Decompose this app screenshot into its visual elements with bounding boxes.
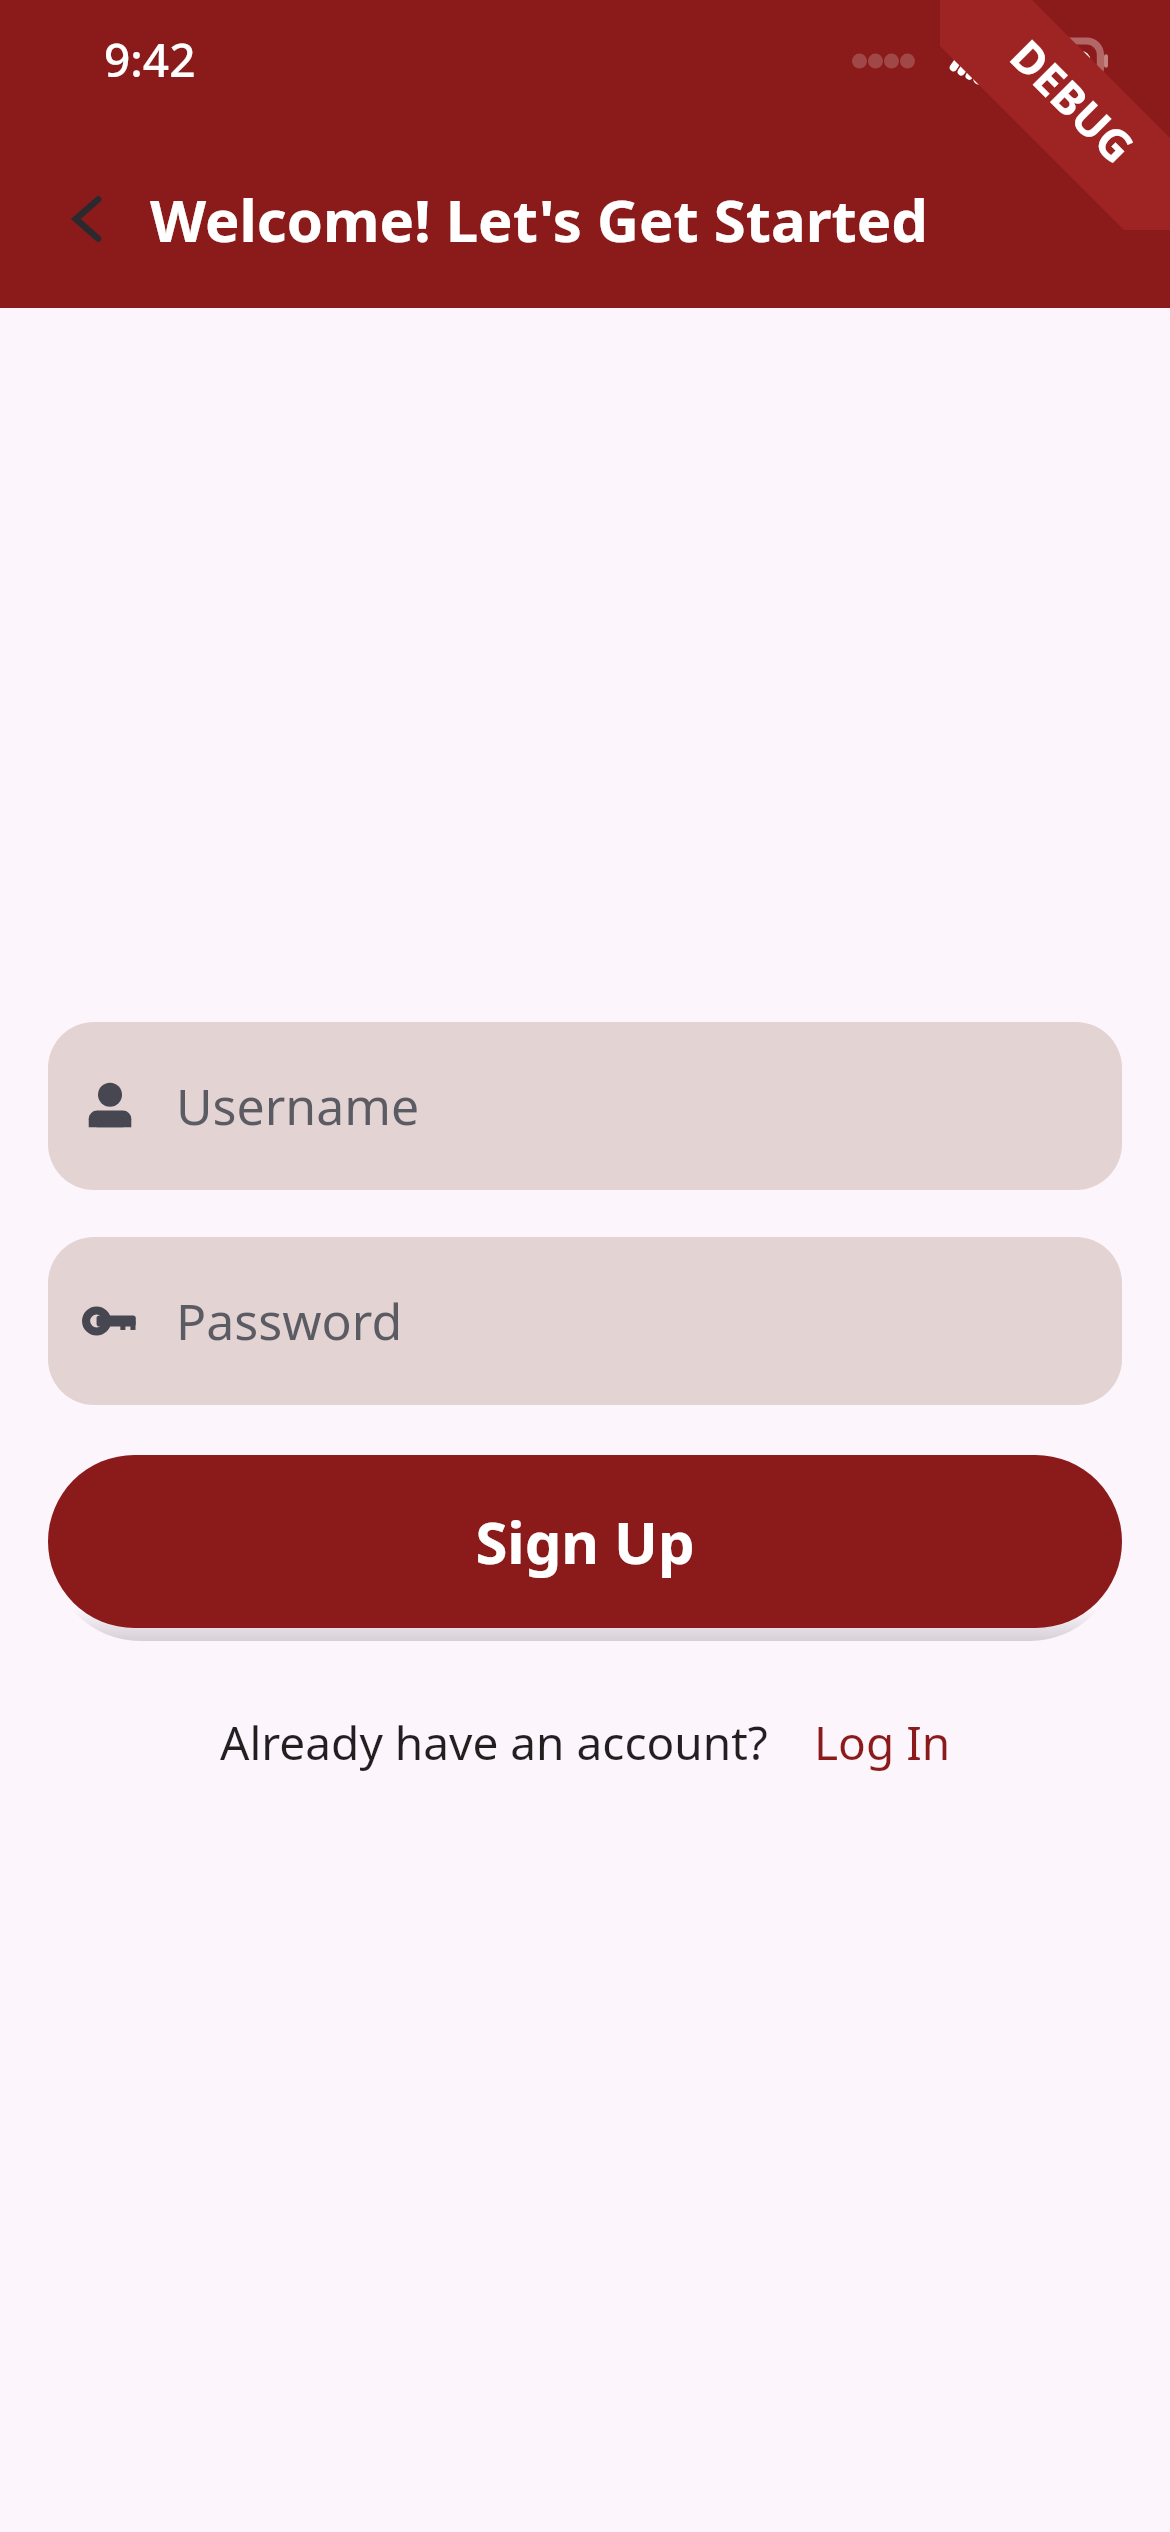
button[interactable]: Back xyxy=(38,170,136,268)
staticText: Already have an account? xyxy=(220,1711,768,1774)
staticText: Username xyxy=(176,1072,420,1140)
other: Username xyxy=(82,1078,138,1134)
button[interactable]: Password xyxy=(48,1237,1122,1405)
staticText: Password xyxy=(176,1287,403,1355)
staticText: Sign Up xyxy=(475,1502,695,1581)
other: Password xyxy=(82,1293,138,1349)
staticText: Log In xyxy=(814,1711,951,1774)
staticText: 9:42 xyxy=(104,28,196,91)
staticText: DEBUG xyxy=(998,26,1148,176)
button[interactable]: Sign Up xyxy=(48,1455,1122,1628)
staticText: Welcome! Let's Get Started xyxy=(150,180,929,259)
button[interactable]: Username xyxy=(48,1022,1122,1190)
button[interactable]: Log In xyxy=(814,1711,951,1774)
